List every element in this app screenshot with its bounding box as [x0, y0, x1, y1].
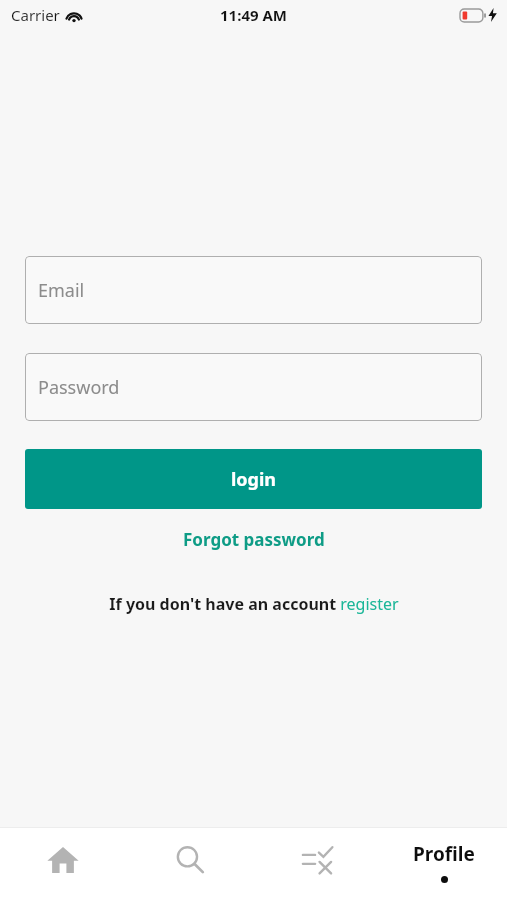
staticText: Carrier [11, 5, 60, 25]
staticText: If you don't have an account register [109, 593, 399, 615]
button[interactable]: Email [25, 256, 482, 324]
staticText: Profile [413, 841, 475, 867]
staticText: Email [38, 278, 85, 303]
button[interactable]: Forgot password [0, 522, 507, 557]
button[interactable]: Search [126, 828, 253, 900]
button[interactable]: Tasks [253, 828, 380, 900]
staticText: login [231, 467, 277, 492]
button[interactable]: login [25, 449, 482, 509]
button[interactable]: Profile [380, 828, 507, 900]
button[interactable]: If you don't have an account register [0, 589, 507, 619]
staticText: Forgot password [183, 528, 325, 551]
button[interactable]: Password [25, 353, 482, 421]
button[interactable]: Home [0, 828, 126, 900]
staticText: Password [38, 375, 120, 400]
staticText: 11:49 AM [220, 5, 287, 25]
